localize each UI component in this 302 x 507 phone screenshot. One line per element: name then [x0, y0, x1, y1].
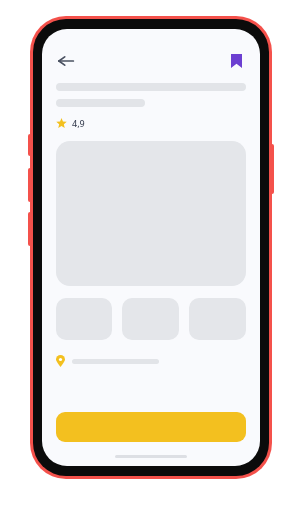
button[interactable]: Bookmark	[226, 51, 246, 71]
button[interactable]	[189, 298, 246, 340]
button[interactable]: Back	[56, 51, 76, 71]
button[interactable]: Continue	[56, 412, 246, 442]
button[interactable]	[56, 298, 112, 340]
staticText: 4,9	[72, 117, 85, 129]
button[interactable]	[122, 298, 179, 340]
button[interactable]: 4,9	[72, 117, 85, 129]
